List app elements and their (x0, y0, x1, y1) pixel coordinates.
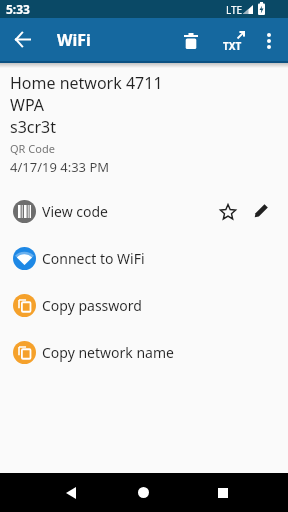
button[interactable]: View code (0, 188, 288, 235)
staticText: s3cr3t (10, 116, 57, 138)
staticText: View code (42, 202, 108, 221)
staticText: Home network 4711 (10, 72, 163, 94)
staticText: QR Code (10, 141, 55, 156)
button[interactable]: Copy network name (0, 329, 288, 376)
staticText: WPA (10, 94, 44, 116)
button[interactable] (178, 28, 204, 54)
button[interactable] (247, 196, 276, 225)
staticText: TXT (223, 39, 242, 53)
staticText: 4/17/19 4:33 PM (10, 158, 110, 176)
staticText: WiFi (57, 29, 91, 51)
button[interactable] (131, 480, 156, 505)
button[interactable] (210, 480, 235, 505)
staticText: Connect to WiFi (42, 249, 145, 268)
button[interactable]: Connect to WiFi (0, 235, 288, 282)
button[interactable] (256, 28, 282, 54)
button[interactable]: Copy password (0, 282, 288, 329)
staticText: Copy password (42, 296, 142, 315)
staticText: 5:33 (6, 1, 30, 17)
button[interactable] (9, 26, 35, 52)
staticText: Copy network name (42, 343, 174, 362)
staticText: LTE (226, 3, 243, 17)
button[interactable] (58, 480, 83, 505)
button[interactable] (213, 197, 242, 226)
button[interactable]: TXT (220, 28, 250, 54)
